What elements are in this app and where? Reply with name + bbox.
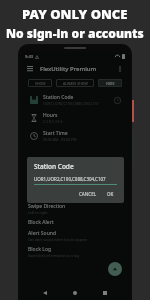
button[interactable]: Station Code [28, 94, 122, 106]
button[interactable]: SHOW [28, 79, 52, 87]
staticText: UOR1,UOR2,C100,C088,C304,C107 [34, 176, 106, 182]
staticText: Block Alert [28, 219, 54, 226]
button[interactable]: Home [70, 288, 80, 298]
staticText: HIDE [106, 81, 115, 86]
staticText: Get alert sound when blocks appear [28, 237, 88, 242]
button[interactable]: Menu [25, 64, 35, 74]
button[interactable]: ALWAYS SHOW [56, 79, 94, 87]
staticText: CANCEL [79, 191, 97, 197]
button[interactable]: Swipe Direction [28, 203, 122, 215]
button[interactable]: Back [40, 288, 50, 298]
button[interactable]: Hours [28, 112, 122, 124]
button[interactable]: Alert Sound [28, 230, 122, 242]
staticText: Left to right [28, 210, 48, 215]
button[interactable]: Help [113, 96, 122, 105]
button[interactable]: Start Time [28, 130, 122, 142]
button[interactable]: Block Alert [28, 219, 122, 226]
button[interactable]: HIDE [98, 79, 122, 87]
staticText: Alert Sound [28, 230, 57, 237]
staticText: ? [117, 98, 119, 103]
staticText: Station Code [43, 94, 74, 101]
staticText: 2 2 8 5 3 6 6 [43, 119, 63, 124]
staticText: Start Time [43, 130, 68, 137]
button[interactable]: Independent Swipe [28, 187, 122, 199]
staticText: PAY ONLY ONCE [22, 5, 128, 23]
staticText: Station Code [34, 162, 74, 171]
staticText: Immediately Swipes on Accept Button [28, 194, 91, 199]
button[interactable]: CANCEL [76, 190, 100, 198]
button[interactable]: Recents [100, 288, 110, 298]
staticText: 9:43 [25, 54, 33, 59]
staticText: FlexUtility Premium [40, 65, 97, 73]
staticText: ALWAYS SHOW [63, 81, 88, 86]
staticText: SHOW [35, 81, 46, 86]
button[interactable]: Block Log [28, 246, 122, 258]
button[interactable]: OK [104, 190, 117, 198]
staticText: 09:00 AM - 09:00 PM [43, 137, 77, 142]
staticText: UOR1,UOR2,C100,C088,C304,C107 [43, 101, 99, 106]
staticText: Block Log [28, 246, 52, 253]
staticText: No sign-in or accounts [6, 25, 144, 41]
staticText: Swipe Direction [28, 203, 66, 210]
staticText: Save block information to a log [28, 253, 79, 258]
button[interactable]: More options [115, 64, 125, 74]
staticText: OK [107, 191, 114, 197]
staticText: Hours [43, 112, 58, 119]
button[interactable]: Add [108, 262, 122, 276]
